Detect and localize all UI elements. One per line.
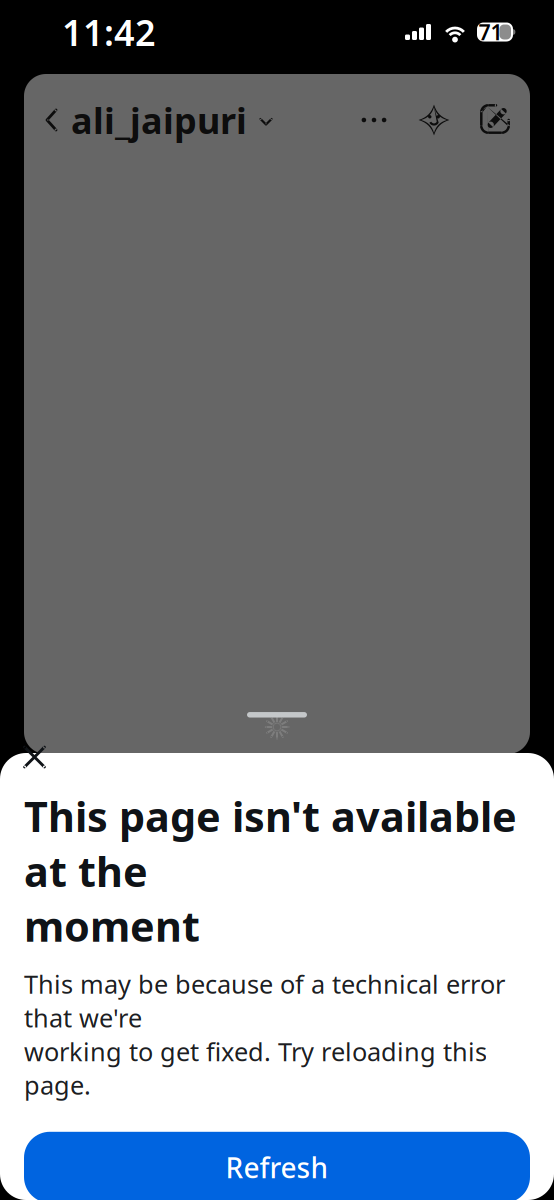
button[interactable]: ali_jaipuri [24,88,273,152]
button[interactable]: New message [476,100,516,140]
staticText: This may be because of a technical error… [24,967,505,1102]
button[interactable]: More options [354,100,394,140]
staticText: Refresh [225,1149,328,1186]
staticText: 71 [478,18,502,46]
button[interactable]: Meta AI [412,98,456,142]
staticText: This page isn't available at the moment [24,788,517,953]
button[interactable]: Refresh [24,1132,530,1200]
staticText: 11:42 [62,8,156,56]
staticText: ali_jaipuri [71,96,247,144]
button[interactable]: Close [0,717,64,780]
